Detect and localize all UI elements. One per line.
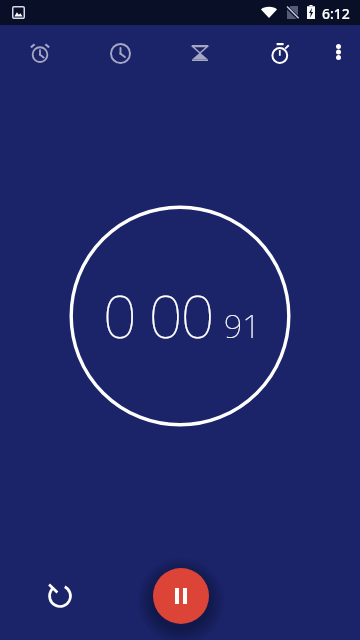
button[interactable]: More options — [318, 25, 360, 81]
staticText: 91 — [224, 304, 261, 348]
button[interactable]: Alarm — [0, 25, 80, 81]
staticText: 0 00 — [103, 275, 213, 355]
staticText: 6:12 — [322, 4, 350, 23]
button[interactable]: Timer — [160, 25, 240, 81]
button[interactable]: Clock — [80, 25, 160, 81]
button[interactable]: Stopwatch — [240, 25, 320, 81]
button[interactable]: Reset — [38, 574, 82, 618]
button[interactable]: Pause — [153, 568, 209, 624]
